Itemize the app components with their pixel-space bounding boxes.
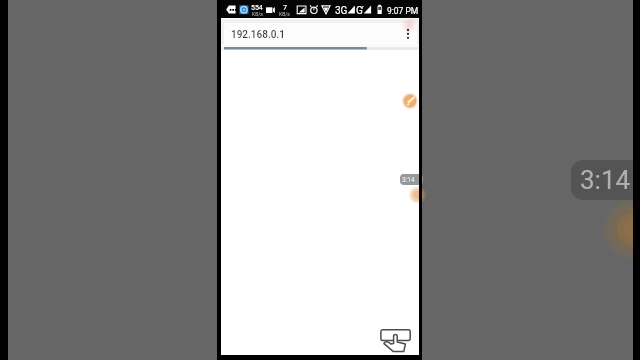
button[interactable]: Draw bbox=[401, 92, 419, 110]
staticText: 554 bbox=[251, 4, 263, 12]
button[interactable]: 192.168.0.1 bbox=[224, 23, 417, 44]
button[interactable]: More options bbox=[399, 23, 417, 44]
staticText: G bbox=[356, 5, 363, 17]
staticText: 9:07 PM bbox=[387, 6, 419, 16]
staticText: 3:14 bbox=[580, 165, 631, 195]
staticText: KB/s bbox=[252, 11, 263, 17]
staticText: 3:14 bbox=[402, 176, 415, 184]
staticText: 192.168.0.1 bbox=[231, 29, 285, 41]
staticText: 3G bbox=[335, 5, 348, 17]
other: Tap bbox=[379, 328, 411, 354]
staticText: KB/s bbox=[279, 11, 290, 17]
staticText: 7 bbox=[283, 4, 287, 12]
staticText: r bbox=[362, 4, 364, 10]
